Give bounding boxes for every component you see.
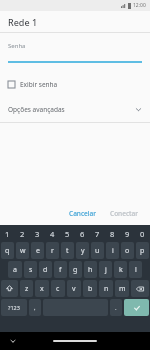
staticText: Rede 1 <box>8 16 38 28</box>
staticText: 4 <box>50 229 55 239</box>
button[interactable]: d <box>39 261 52 278</box>
staticText: Opções avançadas <box>8 105 65 114</box>
staticText: 1 <box>5 229 10 239</box>
staticText: g <box>73 265 78 275</box>
staticText: Conectar <box>110 209 139 218</box>
staticText: 9 <box>125 229 130 239</box>
button[interactable]: , <box>29 299 41 316</box>
button[interactable]: p <box>136 242 149 259</box>
staticText: 12:00 <box>133 2 146 9</box>
staticText: x <box>40 284 44 294</box>
button[interactable]: k <box>114 261 127 278</box>
staticText: b <box>88 284 93 294</box>
button[interactable]: b <box>83 280 97 297</box>
button[interactable]: i <box>106 242 119 259</box>
staticText: Exibir senha <box>20 80 58 89</box>
staticText: 3 <box>35 229 40 239</box>
button[interactable]: v <box>67 280 81 297</box>
staticText: v <box>72 284 76 294</box>
staticText: e <box>36 246 40 256</box>
button[interactable]: Shift <box>1 280 18 297</box>
button[interactable]: o <box>121 242 134 259</box>
button[interactable]: Backspace <box>131 280 149 297</box>
button[interactable]: 2 <box>15 227 29 240</box>
button[interactable]: 7 <box>90 227 104 240</box>
staticText: f <box>59 265 62 275</box>
button[interactable]: Enter <box>124 299 149 316</box>
button[interactable]: Hide keyboard <box>8 336 18 346</box>
staticText: p <box>140 246 145 256</box>
staticText: a <box>13 265 17 275</box>
button[interactable]: 1 <box>1 227 14 240</box>
button[interactable]: e <box>31 242 44 259</box>
button[interactable]: a <box>8 261 22 278</box>
staticText: 7 <box>95 229 100 239</box>
staticText: y <box>81 246 85 256</box>
button[interactable]: c <box>51 280 65 297</box>
staticText: 6 <box>80 229 85 239</box>
button[interactable]: l <box>129 261 142 278</box>
button[interactable]: j <box>99 261 112 278</box>
staticText: i <box>112 246 114 256</box>
button[interactable]: 5 <box>60 227 74 240</box>
button[interactable]: r <box>46 242 59 259</box>
staticText: 2 <box>20 229 25 239</box>
button[interactable]: x <box>35 280 49 297</box>
button[interactable]: s <box>24 261 37 278</box>
staticText: q <box>5 246 10 256</box>
button[interactable]: Opções avançadas <box>0 101 150 117</box>
button[interactable]: Conectar <box>105 207 144 220</box>
button[interactable]: 4 <box>45 227 59 240</box>
staticText: k <box>119 265 123 275</box>
staticText: l <box>135 265 137 275</box>
staticText: Cancelar <box>69 209 97 218</box>
button[interactable]: g <box>69 261 82 278</box>
staticText: t <box>66 246 69 256</box>
staticText: 8 <box>110 229 115 239</box>
button[interactable]: 0 <box>135 227 149 240</box>
button[interactable]: w <box>16 242 29 259</box>
button[interactable]: 8 <box>105 227 119 240</box>
staticText: . <box>115 304 117 312</box>
button[interactable]: q <box>1 242 14 259</box>
staticText: r <box>51 246 54 256</box>
staticText: j <box>105 265 107 275</box>
staticText: c <box>56 284 60 294</box>
staticText: d <box>43 265 48 275</box>
staticText: z <box>25 284 29 294</box>
staticText: Senha <box>8 42 26 50</box>
button[interactable]: Cancelar <box>64 207 102 220</box>
button[interactable]: t <box>61 242 74 259</box>
button[interactable]: m <box>115 280 129 297</box>
staticText: , <box>34 304 36 312</box>
button[interactable]: z <box>20 280 33 297</box>
staticText: u <box>95 246 100 256</box>
staticText: s <box>29 265 33 275</box>
button[interactable]: 6 <box>75 227 89 240</box>
staticText: h <box>88 265 93 275</box>
staticText: o <box>125 246 130 256</box>
button[interactable]: f <box>54 261 67 278</box>
button[interactable]: u <box>91 242 104 259</box>
staticText: 0 <box>140 229 145 239</box>
button[interactable]: . <box>110 299 122 316</box>
button[interactable]: 9 <box>120 227 134 240</box>
button[interactable]: 3 <box>30 227 44 240</box>
staticText: ?123 <box>8 304 20 311</box>
staticText: w <box>20 246 26 256</box>
button[interactable]: Exibir senha <box>0 77 150 91</box>
button[interactable]: n <box>99 280 113 297</box>
staticText: n <box>104 284 109 294</box>
staticText: m <box>119 284 126 294</box>
button[interactable]: h <box>84 261 97 278</box>
button[interactable]: y <box>76 242 89 259</box>
button[interactable]: ?123 <box>1 299 27 316</box>
staticText: 5 <box>65 229 70 239</box>
